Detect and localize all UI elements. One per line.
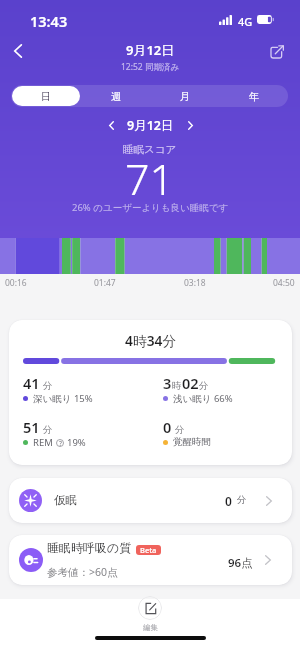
staticText: 26% のユーザーよりも良い睡眠です (72, 201, 229, 214)
button[interactable]: Previous day (102, 116, 120, 134)
staticText: 日 (41, 90, 51, 103)
staticText: 4G (238, 14, 253, 29)
staticText: 02 (182, 373, 199, 393)
button[interactable]: 月 (151, 86, 218, 106)
staticText: Beta (140, 545, 157, 555)
button[interactable]: 週 (82, 86, 149, 106)
button[interactable]: 年 (220, 86, 287, 106)
staticText: 0 (163, 417, 172, 437)
staticText: 19% (67, 436, 86, 449)
staticText: 時 (172, 380, 182, 392)
staticText: 9月12日 (126, 41, 175, 59)
staticText: 03:18 (184, 277, 206, 289)
staticText: 71 (125, 149, 175, 208)
staticText: 分 (175, 424, 185, 436)
staticText: 分 (199, 380, 209, 392)
staticText: 睡眠時呼吸の質 (47, 540, 132, 555)
staticText: 9月12日 (127, 117, 174, 134)
button[interactable]: Back (0, 33, 36, 69)
button[interactable]: 日 (12, 86, 80, 106)
staticText: 4時34分 (125, 331, 177, 350)
staticText: 13:43 (30, 11, 68, 31)
staticText: 分 (43, 380, 53, 392)
staticText: 月 (180, 90, 190, 103)
staticText: 参考値：>60点 (47, 565, 118, 579)
staticText: 0 (225, 493, 232, 509)
staticText: 96点 (228, 555, 253, 571)
staticText: REM (33, 436, 53, 449)
staticText: 04:50 (273, 277, 295, 289)
staticText: 年 (249, 90, 259, 103)
button[interactable]: Next day (181, 116, 199, 134)
button[interactable]: Share (259, 33, 295, 69)
staticText: 分 (237, 494, 247, 506)
staticText: 編集 (143, 623, 158, 632)
staticText: 01:47 (94, 277, 116, 289)
staticText: 深い眠り 15% (33, 392, 93, 405)
staticText: 41 (23, 373, 40, 393)
button[interactable]: 睡眠時呼吸の質 (9, 535, 292, 585)
staticText: 仮眠 (54, 493, 77, 507)
button[interactable]: 仮眠 (9, 478, 292, 523)
button[interactable]: 編集 (128, 594, 172, 634)
staticText: 浅い眠り 66% (173, 392, 233, 405)
staticText: 週 (111, 90, 121, 103)
staticText: 3 (163, 373, 172, 393)
staticText: 12:52 同期済み (121, 61, 180, 73)
staticText: 覚醒時間 (173, 436, 211, 448)
staticText: ? (59, 439, 62, 447)
staticText: 00:16 (5, 277, 27, 289)
staticText: 51 (23, 417, 40, 437)
staticText: 分 (43, 424, 53, 436)
staticText: 睡眠スコア (123, 143, 177, 156)
